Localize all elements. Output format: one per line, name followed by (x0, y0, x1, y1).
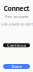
staticText: Connect (3, 4, 29, 13)
staticText: Your accounts (4, 14, 28, 19)
staticText: Link a bank to start (0, 21, 32, 26)
button[interactable]: Continue (3, 43, 30, 47)
staticText: Done (11, 64, 21, 69)
button[interactable]: Done (3, 64, 30, 69)
staticText: Continue (7, 43, 26, 48)
